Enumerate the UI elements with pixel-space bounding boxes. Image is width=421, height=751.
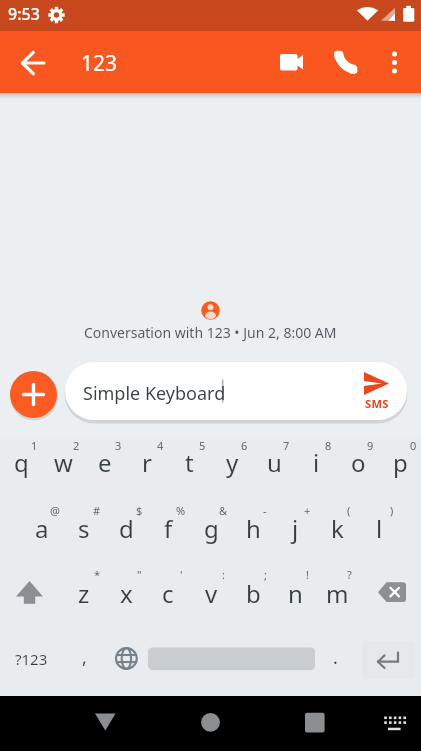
button[interactable] xyxy=(65,362,407,420)
button[interactable]: a xyxy=(21,509,63,547)
staticText: h xyxy=(246,512,261,545)
staticText: 4 xyxy=(157,438,164,453)
staticText: n xyxy=(288,577,303,610)
staticText: % xyxy=(176,503,186,518)
staticText: " xyxy=(137,567,142,582)
staticText: b xyxy=(246,577,261,610)
button[interactable]: y xyxy=(211,443,253,481)
staticText: $ xyxy=(136,503,143,518)
button[interactable]: t xyxy=(168,443,210,481)
staticText: r xyxy=(142,446,152,479)
staticText: + xyxy=(304,503,311,518)
button[interactable]: h xyxy=(232,509,274,547)
staticText: 6 xyxy=(241,438,248,453)
staticText: i xyxy=(313,446,320,479)
staticText: w xyxy=(54,446,73,479)
staticText: - xyxy=(263,503,267,518)
staticText: 8 xyxy=(325,438,332,453)
button[interactable]: p xyxy=(379,443,421,481)
staticText: c xyxy=(162,577,174,610)
staticText: Simple Keyboard xyxy=(83,381,226,406)
staticText: ) xyxy=(390,503,394,518)
staticText: 9 xyxy=(367,438,374,453)
button[interactable] xyxy=(190,702,232,744)
button[interactable]: . xyxy=(320,642,350,672)
button[interactable]: k xyxy=(316,509,358,547)
staticText: ( xyxy=(347,503,351,518)
staticText: ' xyxy=(180,567,183,582)
staticText: e xyxy=(98,446,112,479)
staticText: 9:53 xyxy=(8,3,40,25)
staticText: , xyxy=(82,645,87,670)
staticText: ?123 xyxy=(15,649,48,669)
staticText: 3 xyxy=(115,438,122,453)
button[interactable] xyxy=(148,644,315,673)
staticText: m xyxy=(326,577,349,610)
button[interactable]: x xyxy=(105,574,147,612)
button[interactable]: s xyxy=(63,509,105,547)
button[interactable]: n xyxy=(274,574,316,612)
staticText: 123 xyxy=(81,49,118,78)
staticText: ? xyxy=(347,567,352,582)
button[interactable] xyxy=(12,577,48,609)
button[interactable]: w xyxy=(42,443,84,481)
staticText: 7 xyxy=(283,438,290,453)
button[interactable]: z xyxy=(63,574,105,612)
staticText: . xyxy=(333,645,338,670)
button[interactable]: m xyxy=(316,574,358,612)
staticText: a xyxy=(35,512,49,545)
staticText: ! xyxy=(306,567,309,582)
staticText: o xyxy=(351,446,366,479)
staticText: v xyxy=(205,577,218,610)
button[interactable] xyxy=(326,44,364,82)
staticText: t xyxy=(185,446,194,479)
button[interactable]: d xyxy=(105,509,147,547)
button[interactable] xyxy=(374,705,414,741)
staticText: d xyxy=(119,512,134,545)
staticText: u xyxy=(267,446,282,479)
button[interactable]: c xyxy=(147,574,189,612)
button[interactable] xyxy=(294,702,336,744)
staticText: z xyxy=(78,577,90,610)
button[interactable]: u xyxy=(253,443,295,481)
staticText: x xyxy=(120,577,133,610)
button[interactable]: b xyxy=(232,574,274,612)
staticText: 1 xyxy=(31,438,38,453)
staticText: 2 xyxy=(73,438,80,453)
staticText: j xyxy=(292,512,299,545)
button[interactable]: g xyxy=(190,509,232,547)
button[interactable]: v xyxy=(190,574,232,612)
button[interactable] xyxy=(350,365,406,417)
button[interactable] xyxy=(108,640,145,677)
button[interactable]: , xyxy=(69,642,99,672)
button[interactable]: r xyxy=(126,443,168,481)
button[interactable]: i xyxy=(295,443,337,481)
button[interactable] xyxy=(10,371,57,418)
button[interactable] xyxy=(85,702,127,744)
staticText: k xyxy=(331,512,344,545)
button[interactable]: o xyxy=(337,443,379,481)
button[interactable]: e xyxy=(84,443,126,481)
button[interactable]: f xyxy=(147,509,189,547)
staticText: g xyxy=(204,512,219,545)
button[interactable] xyxy=(272,44,310,82)
button[interactable] xyxy=(376,44,414,82)
button[interactable]: q xyxy=(0,443,42,481)
button[interactable] xyxy=(14,44,52,82)
staticText: f xyxy=(164,512,173,545)
staticText: p xyxy=(393,446,408,479)
staticText: SMS xyxy=(365,396,389,411)
button[interactable]: ?123 xyxy=(3,644,59,674)
button[interactable]: l xyxy=(358,509,400,547)
staticText: 0 xyxy=(410,438,417,453)
button[interactable] xyxy=(362,641,415,679)
button[interactable]: j xyxy=(274,509,316,547)
staticText: : xyxy=(222,567,225,582)
staticText: s xyxy=(78,512,90,545)
staticText: # xyxy=(93,503,101,518)
staticText: y xyxy=(226,446,239,479)
staticText: @ xyxy=(50,503,60,518)
staticText: q xyxy=(14,446,29,479)
staticText: 5 xyxy=(199,438,206,453)
button[interactable] xyxy=(374,577,410,609)
